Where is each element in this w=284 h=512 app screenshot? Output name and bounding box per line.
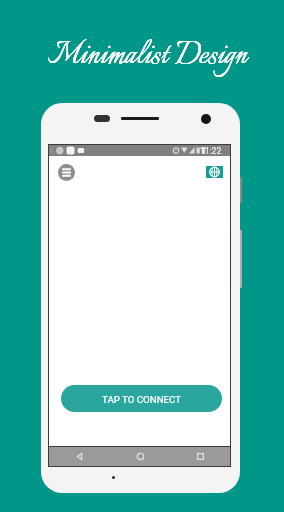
staticText: Minimalist	[48, 33, 168, 81]
button[interactable]: Change language	[206, 166, 223, 178]
button[interactable]: Open navigation menu	[58, 164, 75, 181]
button[interactable]: Back	[49, 446, 110, 466]
button[interactable]: TAP TO CONNECT	[61, 385, 222, 412]
button[interactable]: Home	[110, 446, 170, 466]
staticText: TAP TO CONNECT	[102, 394, 182, 405]
staticText: Minimalist	[48, 33, 168, 81]
button[interactable]: Recent apps	[170, 446, 230, 466]
staticText: 11:22	[200, 146, 222, 156]
staticText: Design	[175, 33, 247, 81]
staticText: Design	[175, 33, 247, 81]
